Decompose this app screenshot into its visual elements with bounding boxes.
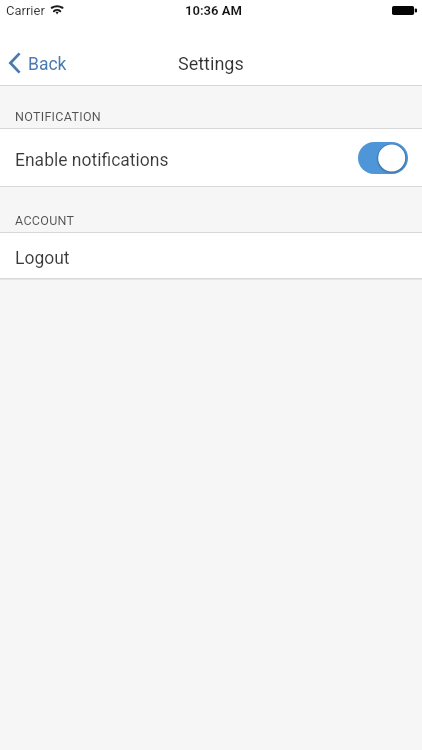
staticText: Settings	[178, 53, 244, 74]
staticText: Back	[28, 54, 67, 75]
staticText: NOTIFICATION	[15, 109, 101, 124]
button[interactable]: Enable notifications toggle	[358, 142, 408, 174]
staticText: ACCOUNT	[15, 213, 75, 228]
staticText: Carrier	[6, 3, 45, 18]
staticText: Logout	[15, 248, 70, 269]
button[interactable]: Logout	[0, 233, 422, 278]
button[interactable]: Back	[0, 44, 81, 81]
staticText: Enable notifications	[15, 150, 169, 171]
other: Back	[9, 53, 20, 73]
other: Wi-Fi	[50, 4, 65, 16]
staticText: 10:36 AM	[185, 3, 242, 18]
button[interactable]: Enable notifications	[0, 129, 422, 186]
